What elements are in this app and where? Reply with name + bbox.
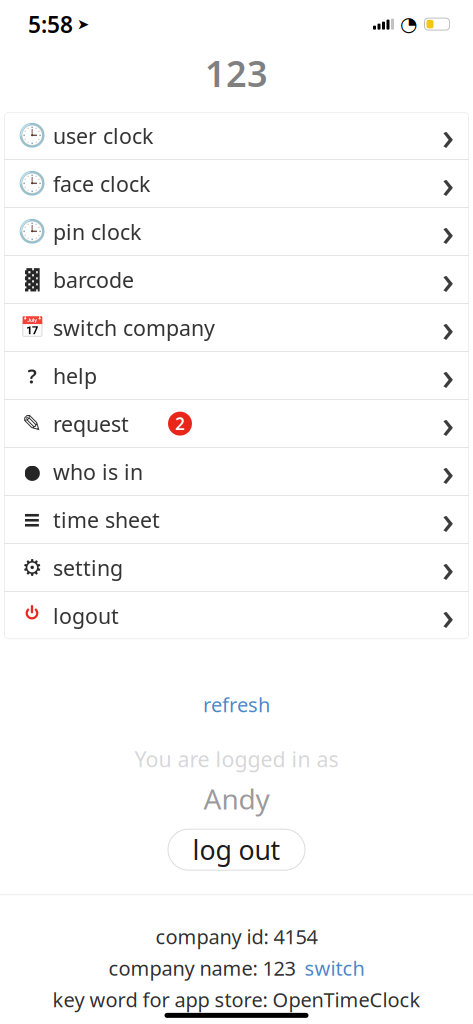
staticText: ◔ [400,13,417,35]
button[interactable]: ▓ [4,256,469,303]
staticText: › [442,111,454,160]
staticText: company name: 123 [108,955,295,981]
staticText: log out [192,832,280,867]
button[interactable]: ⚙ [4,544,469,591]
button[interactable]: refresh [189,685,284,724]
button[interactable]: 📅 [4,304,469,351]
staticText: › [442,255,454,304]
staticText: user clock [53,121,153,150]
staticText: 5:58 [28,9,73,39]
staticText: refresh [203,691,270,718]
staticText: › [442,447,454,496]
staticText: 🕒 [18,219,46,245]
staticText: ● [23,460,40,483]
staticText: ✎ [22,410,42,437]
staticText: 🕒 [18,171,46,197]
staticText: ⚙ [22,555,42,580]
staticText: › [442,495,454,544]
staticText: time sheet [53,505,160,534]
staticText: who is in [53,457,143,486]
button[interactable]: ? [4,352,469,399]
staticText: key word for app store: OpenTimeClock [52,986,420,1013]
staticText: 2 [175,412,185,435]
staticText: › [442,399,454,448]
staticText: switch company [53,313,215,342]
button[interactable]: log out [168,829,305,870]
button[interactable]: 🕒 [4,160,469,207]
staticText: › [442,351,454,400]
staticText: ≡ [22,507,41,532]
staticText: face clock [53,169,150,198]
staticText: barcode [53,265,134,294]
button[interactable]: ≡ [4,496,469,543]
button[interactable]: ✎ [4,400,469,447]
staticText: › [442,207,454,256]
staticText: 📅 [19,316,44,339]
staticText: logout [53,601,119,630]
staticText: switch [304,955,364,981]
staticText: ➤ [77,16,89,32]
staticText: › [442,303,454,352]
staticText: ⏻ [25,602,39,630]
button[interactable]: ● [4,448,469,495]
staticText: You are logged in as [134,745,338,773]
staticText: Andy [203,780,269,817]
button[interactable]: 🕒 [4,112,469,159]
staticText: request [53,409,129,438]
staticText: pin clock [53,217,141,246]
staticText: › [442,543,454,592]
staticText: ? [27,362,36,389]
staticText: 🕒 [18,123,46,149]
staticText: setting [53,553,123,582]
staticText: › [442,159,454,208]
staticText: › [442,591,454,640]
staticText: ▓ [24,268,39,291]
button[interactable]: 🕒 [4,208,469,255]
button[interactable]: ⏻ [4,592,469,639]
staticText: 123 [205,49,268,97]
button[interactable]: switch [304,955,364,981]
staticText: company id: 4154 [155,923,317,950]
staticText: help [53,361,97,390]
